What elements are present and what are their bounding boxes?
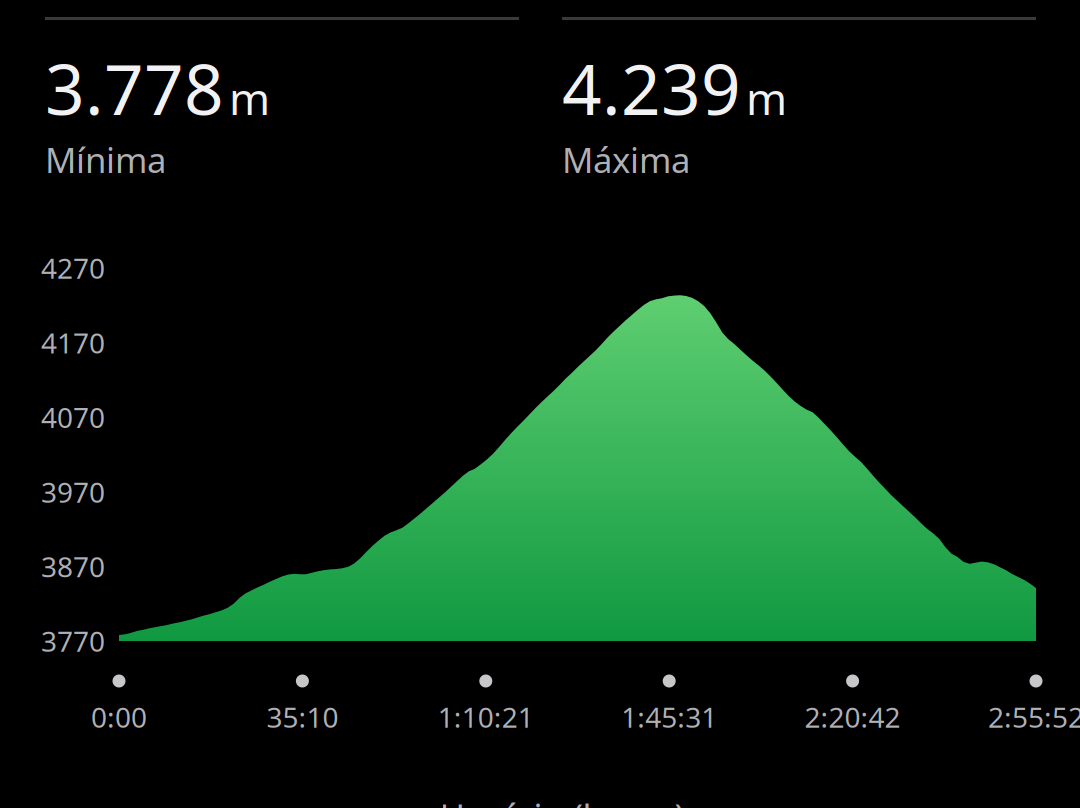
staticText: 35:10 xyxy=(266,698,338,736)
staticText: m xyxy=(229,69,270,127)
button[interactable]: 4.239 xyxy=(562,17,1036,192)
staticText: 3.778 xyxy=(45,42,224,134)
staticText: Mínima xyxy=(45,136,166,182)
staticText: 4.239 xyxy=(562,42,741,134)
staticText: 1:10:21 xyxy=(438,698,534,736)
staticText: 4070 xyxy=(41,399,105,436)
staticText: 3870 xyxy=(41,548,105,585)
staticText: 4170 xyxy=(41,324,105,361)
staticText: 2:55:52 xyxy=(988,698,1080,736)
staticText: 3770 xyxy=(41,622,105,660)
button[interactable]: 3.778 xyxy=(45,17,519,192)
staticText: 0:00 xyxy=(91,698,147,736)
staticText: 2:20:42 xyxy=(805,698,901,736)
staticText: 4270 xyxy=(41,249,105,287)
staticText: 1:45:31 xyxy=(621,698,717,736)
staticText: 3970 xyxy=(41,473,105,510)
staticText: Máxima xyxy=(562,136,690,182)
staticText: Horário (horas) xyxy=(439,793,684,808)
staticText: m xyxy=(746,69,787,127)
